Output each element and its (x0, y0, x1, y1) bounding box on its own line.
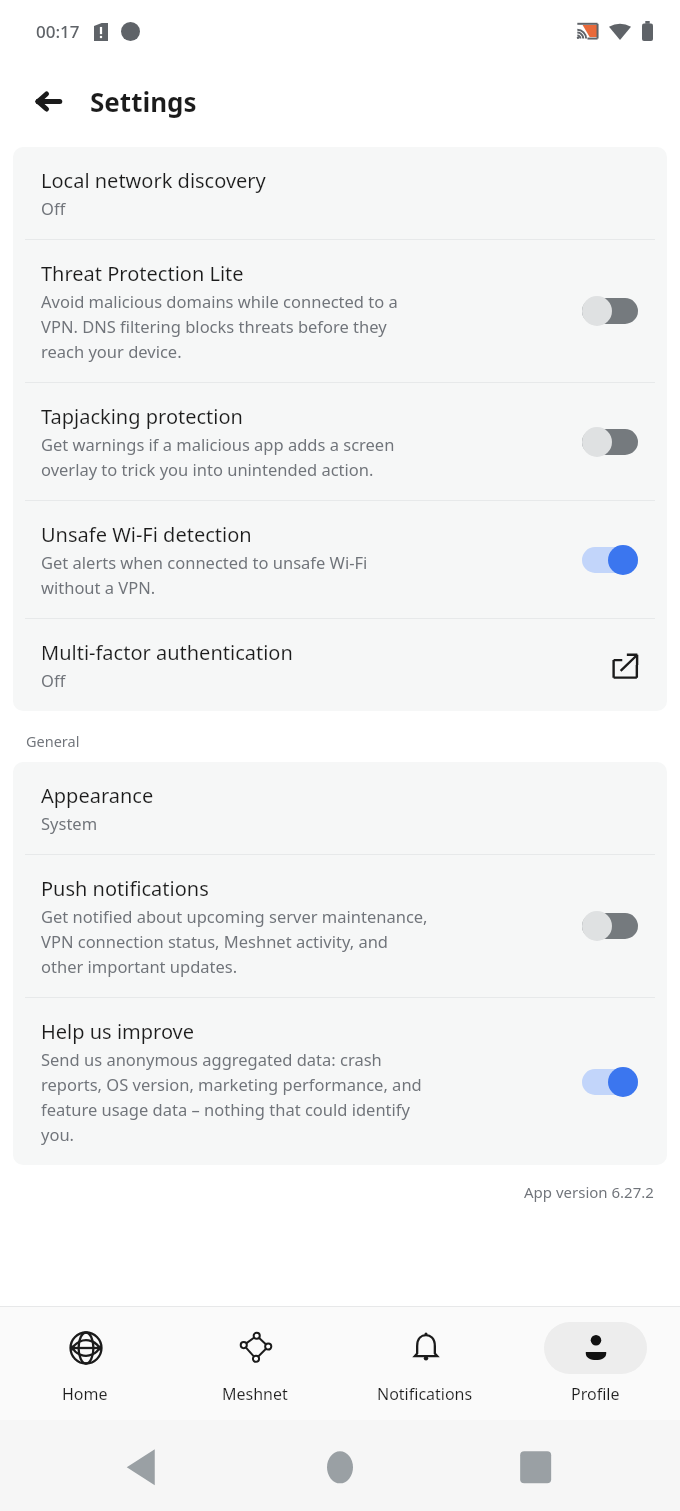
button[interactable]: Multi-factor authentication (13, 619, 667, 711)
button[interactable]: Tapjacking protection (13, 383, 667, 500)
button[interactable]: Profile (510, 1307, 680, 1420)
button[interactable]: Appearance (13, 762, 667, 854)
button[interactable]: Back (24, 77, 72, 125)
staticText: Local network discovery (41, 167, 266, 194)
button[interactable]: Open external link (603, 643, 647, 687)
staticText: System (41, 812, 98, 834)
button[interactable]: Home (0, 1307, 170, 1420)
staticText: General (26, 731, 80, 751)
staticText: Get alerts when connected to unsafe Wi-F… (41, 551, 368, 598)
staticText: Off (41, 197, 66, 219)
staticText: Get notified about upcoming server maint… (41, 905, 428, 977)
staticText: Multi-factor authentication (41, 639, 293, 666)
button[interactable]: Help us improve (13, 998, 667, 1165)
button[interactable]: Toggle on (573, 1060, 647, 1104)
staticText: Push notifications (41, 875, 209, 902)
staticText: Tapjacking protection (41, 403, 243, 430)
button[interactable]: Toggle off (573, 420, 647, 464)
button[interactable]: Toggle off (573, 904, 647, 948)
staticText: Get warnings if a malicious app adds a s… (41, 433, 395, 480)
staticText: Help us improve (41, 1018, 195, 1045)
button[interactable]: Notifications (340, 1307, 510, 1420)
staticText: App version 6.27.2 (524, 1182, 654, 1202)
staticText: Send us anonymous aggregated data: crash… (41, 1048, 422, 1145)
button[interactable]: Toggle off (573, 289, 647, 333)
staticText: Notifications (377, 1383, 473, 1405)
button[interactable]: Push notifications (13, 855, 667, 997)
button[interactable]: Threat Protection Lite (13, 240, 667, 382)
staticText: Off (41, 669, 66, 691)
staticText: Threat Protection Lite (41, 260, 244, 287)
button[interactable]: Unsafe Wi-Fi detection (13, 501, 667, 618)
button[interactable]: Meshnet (170, 1307, 340, 1420)
staticText: Appearance (41, 782, 154, 809)
staticText: Profile (571, 1383, 620, 1405)
staticText: Home (62, 1383, 108, 1405)
button[interactable]: Toggle on (573, 538, 647, 582)
button[interactable]: Local network discovery (13, 147, 667, 239)
staticText: 00:17 (36, 20, 80, 43)
staticText: Settings (90, 84, 197, 119)
staticText: Meshnet (222, 1383, 288, 1405)
staticText: Unsafe Wi-Fi detection (41, 521, 252, 548)
staticText: Avoid malicious domains while connected … (41, 290, 398, 362)
